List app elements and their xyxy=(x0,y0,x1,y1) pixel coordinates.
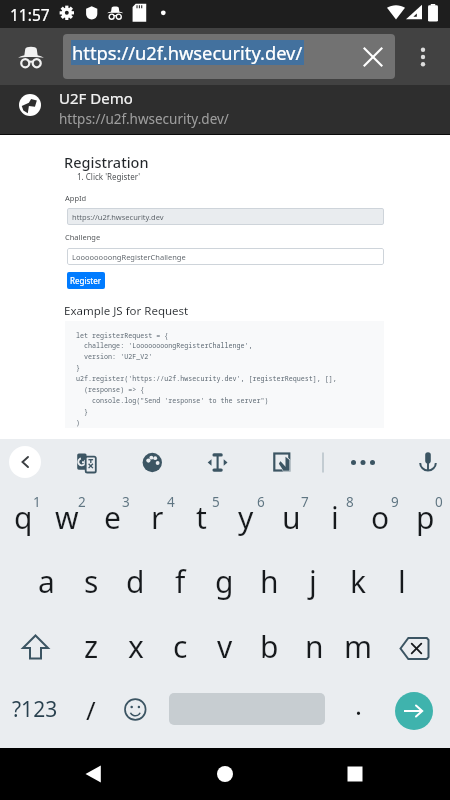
button[interactable]: x xyxy=(114,617,158,675)
staticText: 3 xyxy=(122,493,130,511)
button[interactable]: h xyxy=(247,552,291,610)
staticText: r xyxy=(151,497,164,538)
button[interactable]: Clear xyxy=(351,35,395,79)
staticText: LoooooooongRegisterChallenge xyxy=(72,252,186,262)
button[interactable]: u xyxy=(269,488,313,546)
staticText: AppId xyxy=(65,193,87,203)
staticText: 8 xyxy=(346,493,354,511)
button[interactable]: Register xyxy=(67,272,105,289)
staticText: e xyxy=(104,497,121,538)
staticText: s xyxy=(84,561,99,602)
button[interactable]: k xyxy=(336,552,380,610)
button[interactable]: U2F Demo xyxy=(0,85,450,134)
button[interactable]: r xyxy=(135,488,179,546)
button[interactable]: z xyxy=(69,617,113,675)
staticText: Challenge xyxy=(65,232,101,242)
staticText: . xyxy=(355,687,362,722)
button[interactable]: Enter xyxy=(395,692,433,730)
staticText: q xyxy=(14,497,33,538)
staticText: c xyxy=(173,626,188,667)
staticText: u xyxy=(282,497,301,538)
staticText: w xyxy=(55,497,79,538)
staticText: 7 xyxy=(301,493,309,511)
staticText: Example JS for Request xyxy=(64,303,189,319)
staticText: v xyxy=(217,626,233,667)
staticText: Register xyxy=(70,275,102,286)
button[interactable]: Back xyxy=(70,750,118,798)
staticText: / xyxy=(86,692,96,727)
button[interactable]: j xyxy=(291,552,335,610)
button[interactable]: f xyxy=(158,552,202,610)
button[interactable]: Emoji xyxy=(115,690,155,730)
staticText: https://u2f.hwsecurity.dev xyxy=(72,212,164,222)
button[interactable]: q xyxy=(1,488,45,546)
button[interactable]: c xyxy=(158,617,202,675)
staticText: 1 xyxy=(33,493,41,511)
button[interactable]: https://u2f.hwsecurity.dev/ xyxy=(63,34,395,79)
button[interactable]: . xyxy=(338,684,378,724)
button[interactable]: More options xyxy=(403,37,443,77)
staticText: n xyxy=(305,626,324,667)
button[interactable]: Recent apps xyxy=(331,750,379,798)
staticText: j xyxy=(309,561,317,602)
staticText: x xyxy=(128,626,144,667)
staticText: l xyxy=(398,561,406,602)
staticText: U2F Demo xyxy=(59,88,133,108)
button[interactable]: n xyxy=(292,617,336,675)
button[interactable]: o xyxy=(358,488,402,546)
button[interactable]: Back xyxy=(9,446,41,478)
staticText: y xyxy=(238,497,254,538)
button[interactable]: Incognito xyxy=(11,65,51,105)
button[interactable]: w xyxy=(45,488,89,546)
button[interactable]: p xyxy=(403,488,447,546)
button[interactable]: t xyxy=(179,488,223,546)
staticText: 9 xyxy=(391,493,399,511)
button[interactable]: s xyxy=(69,552,113,610)
button[interactable]: y xyxy=(224,488,268,546)
button[interactable]: d xyxy=(113,552,157,610)
staticText: k xyxy=(350,561,367,602)
button[interactable]: https://u2f.hwsecurity.dev xyxy=(67,208,384,225)
button[interactable]: b xyxy=(247,617,291,675)
staticText: https://u2f.hwsecurity.dev/ xyxy=(72,40,303,65)
staticText: 11:57 xyxy=(10,4,50,25)
button[interactable]: g xyxy=(202,552,246,610)
staticText: 6 xyxy=(257,493,265,511)
button[interactable]: m xyxy=(336,617,380,675)
button[interactable]: i xyxy=(313,488,357,546)
button[interactable]: LoooooooongRegisterChallenge xyxy=(67,248,384,265)
staticText: 2 xyxy=(78,493,86,511)
staticText: o xyxy=(371,497,390,538)
button[interactable]: e xyxy=(90,488,134,546)
button[interactable]: a xyxy=(24,552,68,610)
staticText: 1. Click 'Register' xyxy=(77,171,141,182)
button[interactable]: ?123 xyxy=(5,689,65,729)
staticText: 5 xyxy=(212,493,220,511)
button[interactable]: l xyxy=(380,552,424,610)
button[interactable]: / xyxy=(71,689,111,729)
staticText: let registerRequest = { challenge: 'Looo… xyxy=(76,331,337,427)
staticText: Registration xyxy=(64,152,149,172)
staticText: https://u2f.hwsecurity.dev/ xyxy=(59,110,229,128)
staticText: z xyxy=(84,626,99,667)
staticText: h xyxy=(260,561,279,602)
staticText: m xyxy=(344,626,373,667)
staticText: t xyxy=(196,497,207,538)
staticText: 0 xyxy=(435,493,443,511)
staticText: 4 xyxy=(167,493,175,511)
staticText: g xyxy=(215,561,234,602)
button[interactable]: Home xyxy=(201,750,249,798)
staticText: ?123 xyxy=(12,695,58,724)
button[interactable]: v xyxy=(203,617,247,675)
staticText: f xyxy=(175,561,186,602)
staticText: d xyxy=(126,561,145,602)
staticText: b xyxy=(260,626,279,667)
staticText: i xyxy=(331,497,339,538)
staticText: p xyxy=(416,497,435,538)
staticText: a xyxy=(38,561,55,602)
